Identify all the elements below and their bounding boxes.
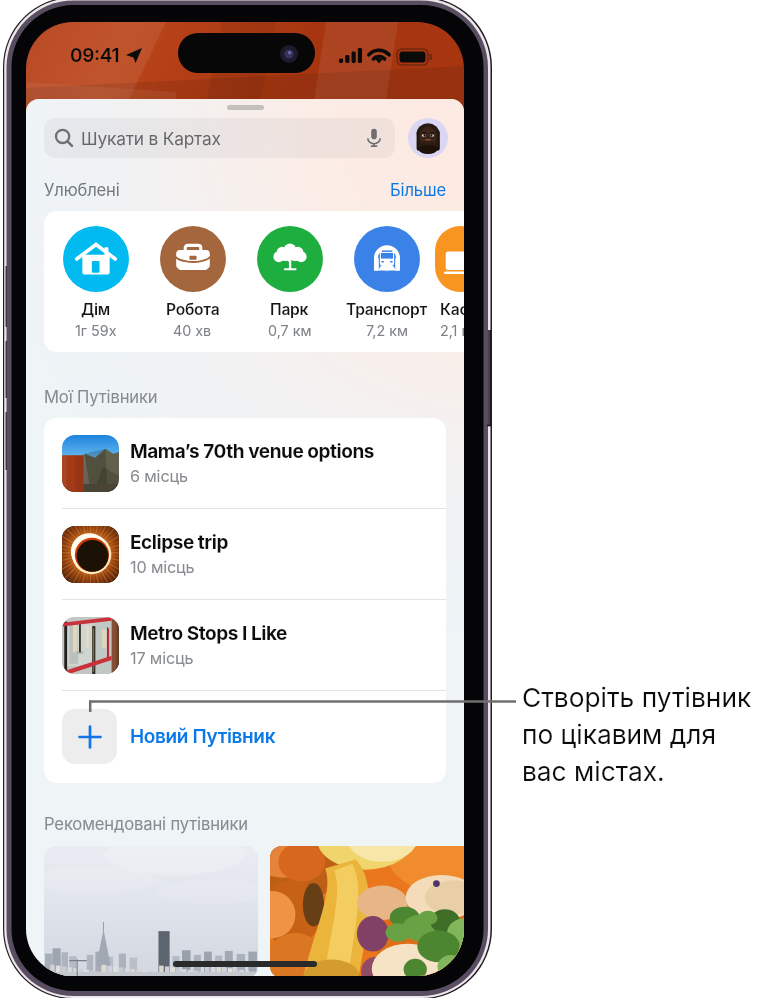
staticText: Улюблені	[44, 180, 120, 200]
staticText: Кафе	[440, 300, 464, 319]
button[interactable]: Food guide	[270, 846, 464, 976]
button[interactable]: Eclipse trip	[44, 509, 446, 599]
button[interactable]: Парк	[241, 226, 338, 339]
staticText: Рекомендовані путівники	[44, 814, 249, 834]
staticText: 7,2 км	[366, 322, 408, 339]
staticText: Більше	[390, 180, 446, 200]
button[interactable]: San Francisco guide	[44, 846, 258, 976]
staticText: 1г 59х	[75, 322, 117, 339]
staticText: 09:41	[70, 44, 120, 67]
staticText: 10 місць	[130, 557, 195, 577]
staticText: Створіть путівник по цікавим для вас міс…	[522, 682, 752, 788]
other: Add guide	[62, 709, 117, 764]
staticText: Eclipse trip	[130, 531, 229, 554]
staticText: Мої Путівники	[44, 387, 158, 407]
staticText: Шукати в Картах	[81, 128, 221, 149]
staticText: 2,1 км	[440, 322, 464, 339]
button[interactable]: Кафе	[435, 226, 464, 339]
staticText: Парк	[270, 300, 309, 319]
staticText: Робота	[166, 300, 220, 319]
button[interactable]: Profile	[408, 118, 448, 158]
button[interactable]: Шукати в Картах	[44, 118, 395, 158]
staticText: 6 місць	[130, 466, 188, 486]
button[interactable]: Voice search	[361, 125, 387, 151]
button[interactable]: Add guide	[44, 691, 446, 782]
staticText: Дім	[81, 300, 111, 319]
button[interactable]: Metro Stops I Like	[44, 600, 446, 690]
button[interactable]: Робота	[144, 226, 241, 339]
staticText: Новий Путівник	[130, 725, 276, 748]
button[interactable]: Транспорт	[338, 226, 435, 339]
staticText: Транспорт	[346, 300, 428, 319]
staticText: 17 місць	[130, 648, 194, 668]
staticText: Metro Stops I Like	[130, 622, 287, 645]
staticText: 0,7 км	[268, 322, 312, 339]
button[interactable]: Mama’s 70th venue options	[44, 418, 446, 508]
staticText: Mama’s 70th venue options	[130, 440, 375, 463]
button[interactable]: Дім	[47, 226, 144, 339]
button[interactable]: Більше	[390, 180, 446, 200]
staticText: 40 хв	[173, 322, 212, 339]
